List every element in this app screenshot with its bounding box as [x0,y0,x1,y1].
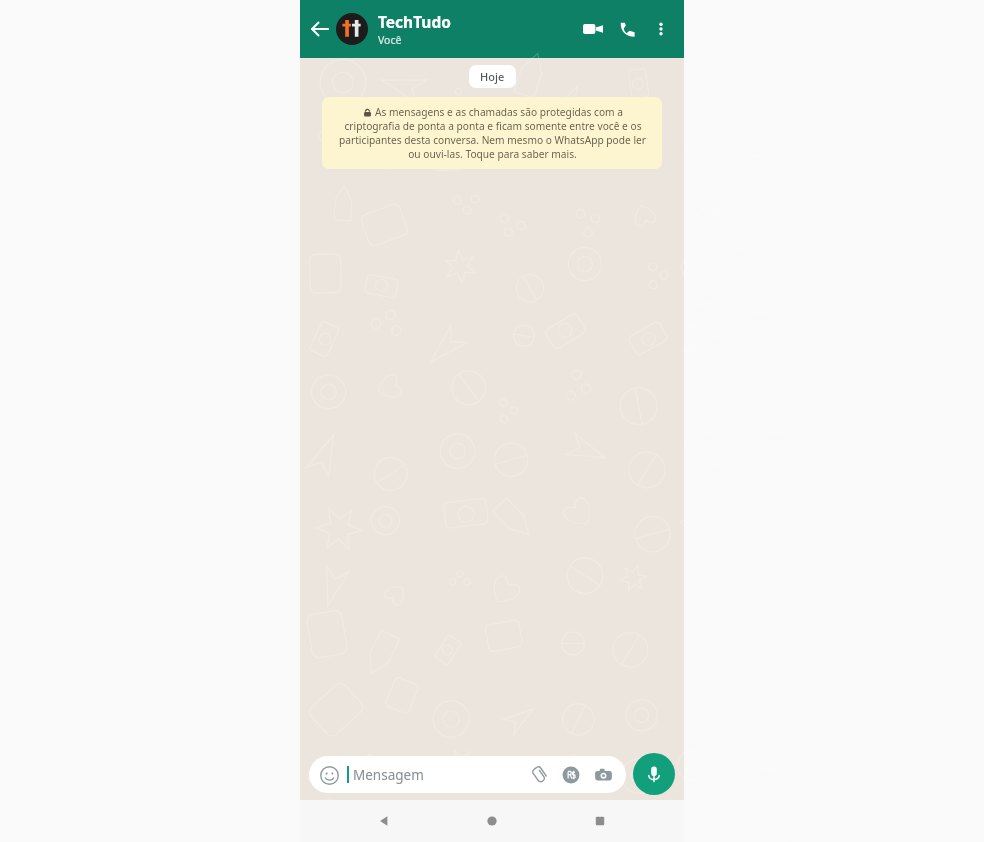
staticText: TechTudo [378,11,451,32]
staticText: participantes desta conversa. Nem mesmo … [339,133,646,147]
button[interactable]: Payment [559,763,583,787]
button[interactable]: Contact photo [336,13,368,45]
button[interactable]: TechTudo [378,11,576,47]
button[interactable]: More options [644,12,678,46]
button[interactable]: Record voice message [633,753,675,795]
staticText: Você [378,33,402,47]
button[interactable]: As mensagens e as chamadas são protegida… [322,97,662,169]
staticText: As mensagens e as chamadas são protegida… [375,105,623,119]
button[interactable]: Emoji [309,756,626,793]
button[interactable]: Back [360,800,408,842]
button[interactable]: Attach [527,763,551,787]
button[interactable]: Recent apps [576,800,624,842]
staticText: Mensagem [353,766,424,784]
button[interactable]: Hoje [469,65,516,88]
button[interactable]: Voice call [610,12,644,46]
button[interactable]: Video call [576,12,610,46]
button[interactable]: Back [306,15,334,43]
staticText: ou ouvi-las. Toque para saber mais. [408,147,577,161]
button[interactable]: Home [468,800,516,842]
button[interactable]: Emoji [318,764,340,786]
staticText: Hoje [480,69,505,84]
staticText: criptografia de ponta a ponta e ficam so… [344,119,642,133]
button[interactable]: Camera [591,763,615,787]
